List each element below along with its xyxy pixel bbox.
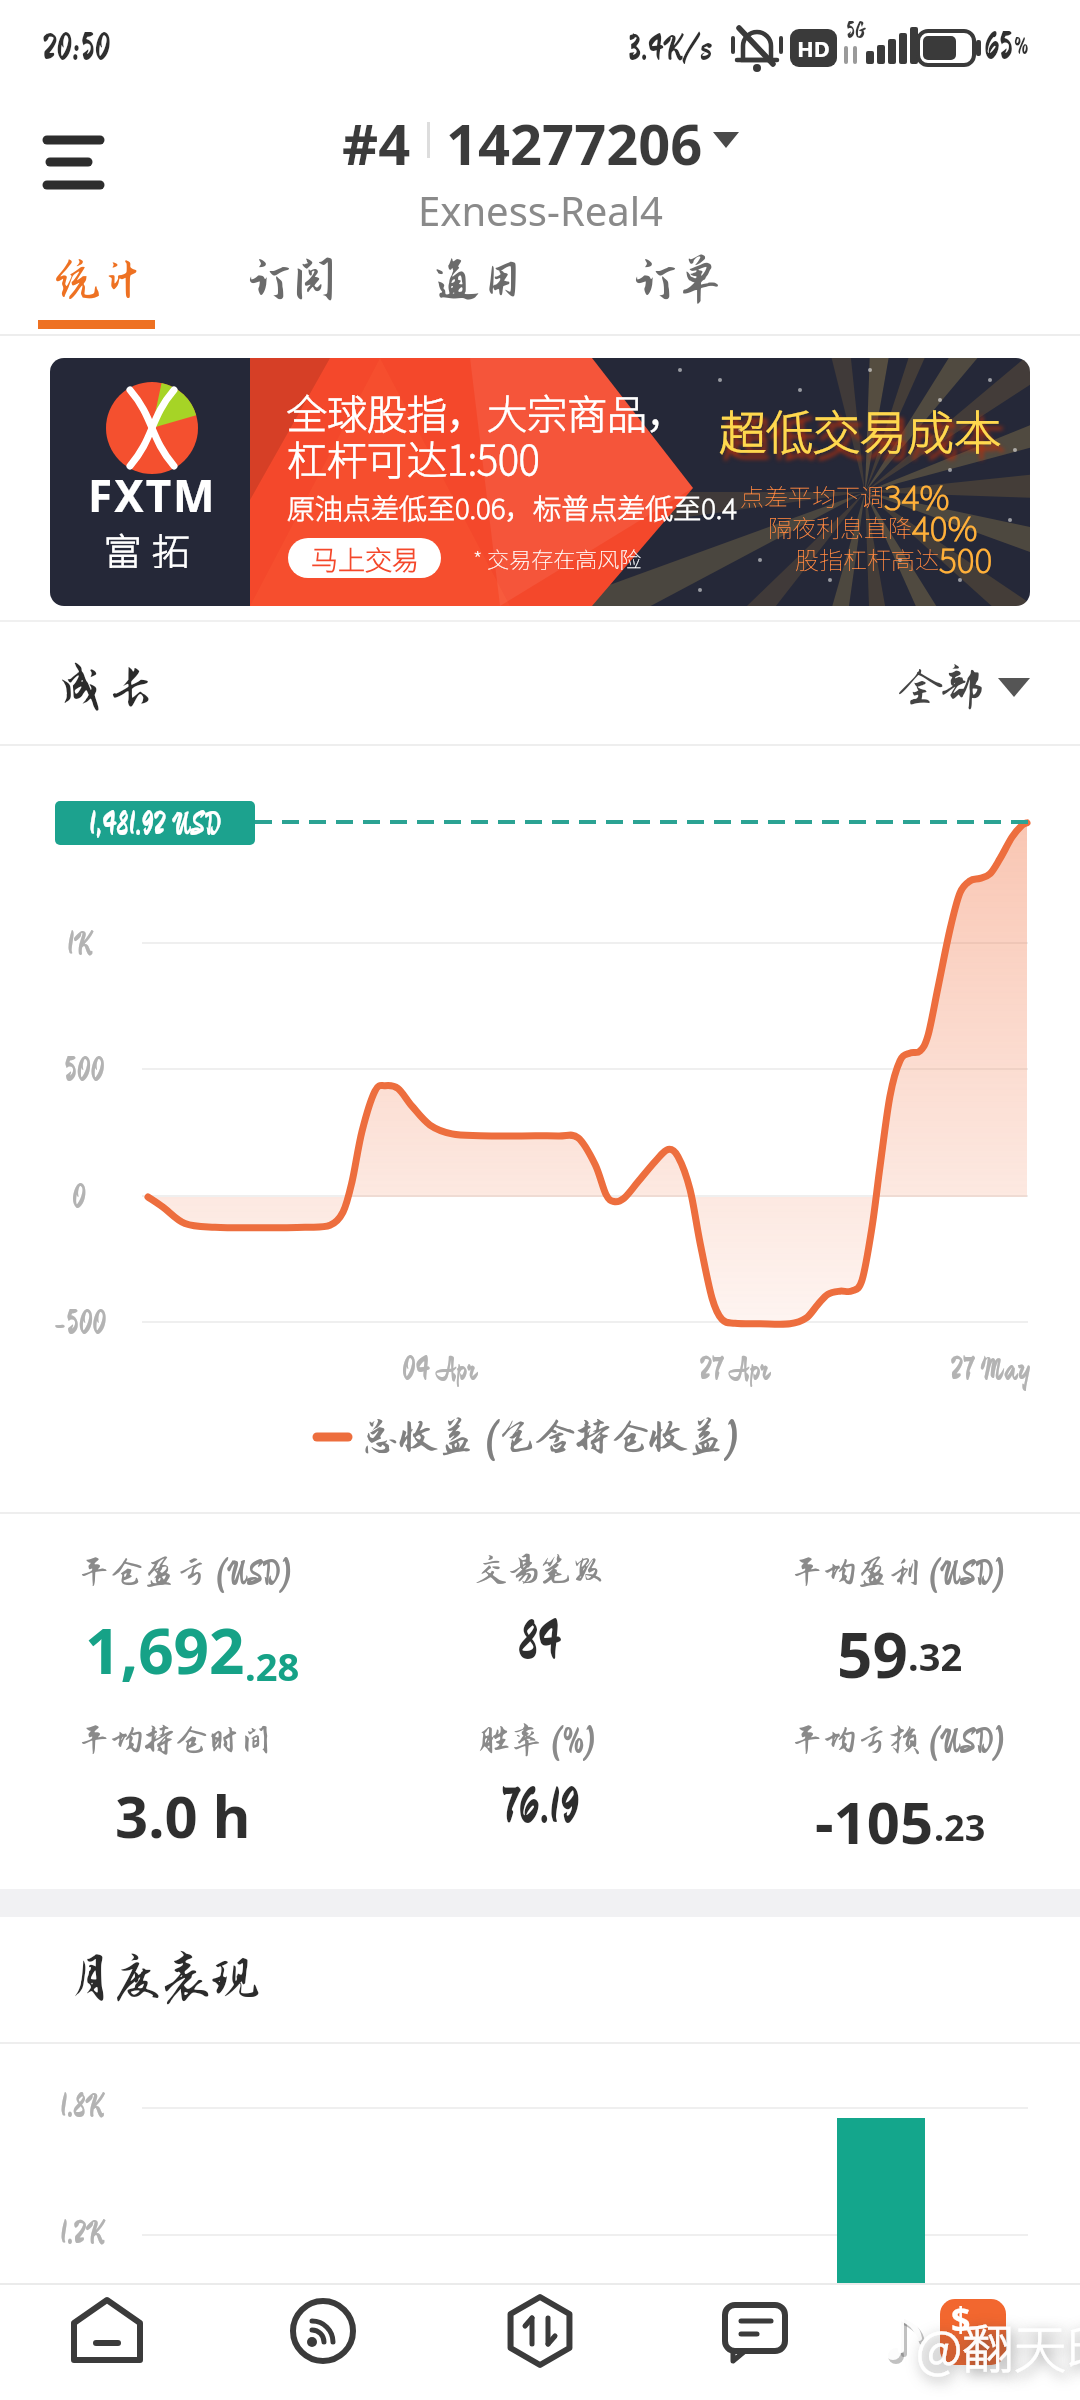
staticText: 订阅 [247,255,337,305]
button[interactable] [705,2288,805,2393]
staticText: 40% [912,502,978,551]
staticText: FXTM [88,465,217,515]
staticText: 成长 [55,660,156,716]
staticText: * 交易存在高风险 [473,542,642,574]
staticText: 1.8K [60,2088,104,2122]
staticText: 总收益 (包含持仓收益) [362,1416,740,1458]
staticText: 76.19 [501,1779,580,1831]
staticText: 超低交易成本 [719,395,1001,463]
staticText: 平均亏损 (USD) [791,1722,1006,1758]
button[interactable]: 统计 [40,240,160,320]
staticText: 0 [72,1179,86,1213]
button[interactable]: 订阅 [232,240,352,320]
staticText: 股指杠杆高达 [795,541,939,576]
staticText: 平均盈利 (USD) [791,1554,1006,1590]
staticText: 3.4K/s [628,29,712,65]
button[interactable] [273,2288,373,2393]
staticText: 34% [884,471,950,520]
staticText: 通用 [435,255,525,305]
staticText: 20:50 [42,28,111,66]
staticText: @翻天印 [916,2308,1080,2383]
staticText: .23 [934,1803,986,1852]
staticText: 27 May [950,1352,1031,1385]
staticText: 1.2K [60,2215,105,2249]
button[interactable]: 马上交易 [288,538,441,578]
staticText: -105 [815,1782,934,1852]
staticText: 富拓 [104,522,201,568]
staticText: 14277206 [446,105,703,175]
staticText: #4 [342,105,411,175]
staticText: 马上交易 [311,539,419,578]
staticText: % [1014,34,1029,58]
staticText: 59 [837,1612,908,1682]
staticText: 统计 [55,255,145,305]
staticText: 27 Apr [699,1352,771,1385]
staticText: 1,481.92 USD [89,807,221,840]
staticText: 500 [939,534,993,583]
button[interactable] [922,2288,1022,2393]
staticText: 5G [846,18,866,42]
staticText: 月度表现 [65,1951,260,2005]
staticText: 原油点差低至0.06，标普点差低至0.4 [287,487,737,528]
staticText: .28 [245,1640,300,1692]
staticText: 3.0 h [115,1776,251,1855]
staticText: .32 [908,1630,963,1682]
staticText: 交易笔数 [475,1552,605,1588]
staticText: 订单 [633,255,723,305]
staticText: 65 [984,27,1014,65]
button[interactable]: 通用 [420,240,540,320]
button[interactable]: 全部 [900,650,1070,726]
staticText: 1K [67,926,93,960]
staticText: Exness-Real4 [418,183,663,233]
staticText: HD [797,33,830,63]
button[interactable] [30,115,120,205]
staticText: 全球股指，大宗商品， [287,383,687,441]
button[interactable]: #4 [0,105,1080,175]
button[interactable]: 订单 [618,240,738,320]
staticText: -500 [54,1305,106,1339]
staticText: 全部 [900,665,983,711]
staticText: 隔夜利息直降 [768,509,912,544]
staticText: 胜率 (%) [478,1722,597,1758]
staticText: $ [951,2296,971,2340]
staticText: 点差平均下调 [740,478,884,513]
staticText: 1,692 [85,1608,245,1692]
button[interactable] [57,2288,157,2393]
staticText: 平均持仓时间 [78,1722,273,1758]
staticText: 04 Apr [402,1352,478,1385]
staticText: 500 [64,1052,105,1086]
staticText: 平仓盈亏 (USD) [78,1554,293,1590]
button[interactable] [50,358,1030,606]
button[interactable] [490,2288,590,2393]
staticText: 杠杆可达1:500 [287,429,540,487]
staticText: 84 [518,1613,562,1667]
